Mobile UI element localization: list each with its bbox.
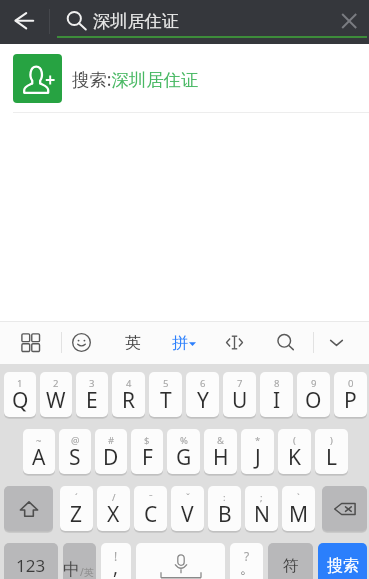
staticText: J: [255, 443, 261, 472]
staticText: 5: [163, 377, 169, 390]
button[interactable]: Back: [0, 0, 48, 44]
staticText: (: [293, 434, 296, 447]
staticText: 3: [89, 377, 95, 390]
button[interactable]: 中: [63, 543, 96, 579]
staticText: 拼: [172, 333, 188, 353]
staticText: R: [122, 386, 136, 415]
button[interactable]: 0: [334, 372, 367, 417]
button[interactable]: ˋ: [282, 486, 315, 531]
staticText: ~: [36, 434, 42, 447]
staticText: 英: [125, 333, 141, 353]
staticText: 中: [63, 559, 80, 579]
button[interactable]: /: [97, 486, 130, 531]
staticText: ,: [113, 554, 119, 579]
button[interactable]: 搜索:深圳居住证: [0, 44, 369, 113]
staticText: ˇ: [186, 491, 190, 504]
staticText: P: [344, 386, 357, 415]
staticText: I: [273, 386, 281, 415]
staticText: Y: [197, 386, 209, 415]
button[interactable]: Move cursor: [209, 321, 260, 364]
staticText: ˊ: [75, 491, 78, 504]
button[interactable]: Search: [260, 321, 311, 364]
button[interactable]: Shift: [4, 486, 53, 531]
staticText: ?: [244, 548, 250, 564]
button[interactable]: ˉ: [134, 486, 167, 531]
button[interactable]: ˇ: [171, 486, 204, 531]
staticText: X: [107, 500, 120, 529]
button[interactable]: 9: [297, 372, 330, 417]
button[interactable]: 2: [40, 372, 72, 417]
staticText: ): [330, 434, 333, 447]
staticText: 深圳居住证: [93, 10, 179, 32]
button[interactable]: ~: [23, 429, 55, 474]
button[interactable]: 搜索: [318, 543, 367, 579]
button[interactable]: 1: [4, 372, 36, 417]
staticText: 符: [283, 556, 299, 576]
button[interactable]: 7: [223, 372, 256, 417]
button[interactable]: Hide keyboard: [311, 321, 362, 364]
button[interactable]: 拼: [158, 321, 209, 364]
staticText: U: [232, 386, 248, 415]
button[interactable]: 英: [107, 321, 158, 364]
staticText: 9: [311, 377, 317, 390]
staticText: !: [114, 548, 118, 564]
staticText: K: [288, 443, 301, 472]
staticText: L: [326, 443, 338, 472]
staticText: 搜索:深圳居住证: [72, 67, 199, 91]
staticText: ˋ: [297, 491, 300, 504]
button[interactable]: ˊ: [60, 486, 93, 531]
staticText: 0: [348, 377, 354, 390]
staticText: 123: [16, 554, 46, 577]
staticText: %: [180, 434, 188, 447]
staticText: 搜索: [327, 556, 359, 576]
staticText: F: [142, 443, 153, 472]
button[interactable]: Space: [136, 543, 225, 579]
button[interactable]: !: [101, 543, 131, 579]
staticText: W: [46, 386, 66, 415]
staticText: 8: [274, 377, 280, 390]
button[interactable]: Emoji: [56, 321, 107, 364]
button[interactable]: :: [208, 486, 241, 531]
button[interactable]: Keyboard layouts: [5, 321, 56, 364]
staticText: :: [223, 491, 226, 504]
staticText: 7: [237, 377, 243, 390]
button[interactable]: 123: [4, 543, 58, 579]
button[interactable]: (: [278, 429, 311, 474]
staticText: M: [289, 500, 309, 529]
button[interactable]: 4: [112, 372, 145, 417]
staticText: 2: [53, 377, 59, 390]
button[interactable]: 8: [260, 372, 293, 417]
staticText: G: [176, 443, 192, 472]
staticText: H: [213, 443, 229, 472]
staticText: N: [254, 500, 270, 529]
button[interactable]: Clear text: [327, 0, 369, 44]
button[interactable]: 3: [76, 372, 108, 417]
staticText: A: [32, 443, 46, 472]
button[interactable]: 6: [186, 372, 219, 417]
staticText: #: [108, 434, 115, 447]
button[interactable]: $: [131, 429, 163, 474]
staticText: T: [160, 386, 172, 415]
button[interactable]: @: [59, 429, 91, 474]
button[interactable]: ;: [245, 486, 278, 531]
staticText: ˉ: [149, 491, 153, 504]
staticText: E: [86, 386, 98, 415]
staticText: *: [255, 434, 261, 447]
staticText: B: [218, 500, 232, 529]
button[interactable]: #: [95, 429, 127, 474]
button[interactable]: *: [241, 429, 274, 474]
staticText: /英: [80, 565, 94, 579]
staticText: D: [103, 443, 119, 472]
button[interactable]: Backspace: [322, 486, 367, 531]
button[interactable]: &: [204, 429, 237, 474]
button[interactable]: ): [315, 429, 348, 474]
button[interactable]: 符: [268, 543, 313, 579]
staticText: Q: [12, 386, 29, 415]
button[interactable]: 5: [149, 372, 182, 417]
staticText: Z: [70, 500, 83, 529]
staticText: V: [181, 500, 194, 529]
button[interactable]: %: [167, 429, 200, 474]
staticText: @: [71, 434, 80, 447]
button[interactable]: ?: [230, 543, 263, 579]
staticText: &: [217, 434, 224, 447]
